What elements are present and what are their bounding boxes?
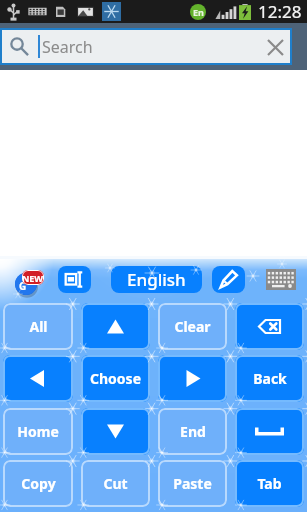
staticText: Paste	[173, 474, 212, 493]
button[interactable]: Handwriting	[212, 266, 245, 293]
button[interactable]: Paste	[158, 460, 227, 507]
staticText: Choose	[90, 369, 141, 388]
button[interactable]: Back	[235, 355, 304, 402]
button[interactable]: Cut	[81, 460, 150, 507]
button[interactable]: Switch keyboard	[58, 266, 91, 293]
staticText: Tab	[257, 474, 282, 493]
button[interactable]: Tab	[235, 460, 304, 507]
staticText: Back	[253, 369, 287, 388]
staticText: 12:28	[258, 0, 302, 23]
staticText: End	[180, 422, 206, 441]
button[interactable]: Clear search	[263, 35, 287, 59]
button[interactable]: Hide keyboard	[266, 269, 296, 290]
staticText: Clear	[174, 317, 211, 336]
button[interactable]: Store	[15, 269, 46, 295]
staticText: English	[127, 268, 186, 291]
button[interactable]: Home	[3, 408, 73, 455]
button[interactable]: Search	[2, 30, 290, 63]
button[interactable]: English	[111, 266, 202, 293]
button[interactable]: Clear	[158, 303, 227, 350]
button[interactable]: right	[158, 355, 227, 402]
staticText: G	[19, 279, 27, 293]
staticText: All	[29, 317, 48, 336]
staticText: Copy	[21, 474, 56, 493]
staticText: En	[193, 6, 204, 18]
button[interactable]: up	[81, 303, 150, 350]
button[interactable]: Choose	[81, 355, 150, 402]
staticText: Cut	[103, 474, 128, 493]
button[interactable]: Copy	[3, 460, 73, 507]
staticText: Home	[17, 422, 59, 441]
button[interactable]: left	[3, 355, 73, 402]
button[interactable]: All	[3, 303, 73, 350]
staticText: NEW	[22, 272, 44, 284]
button[interactable]: down	[81, 408, 150, 455]
button[interactable]: space	[235, 408, 304, 455]
button[interactable]: backspace	[235, 303, 304, 350]
button[interactable]: End	[158, 408, 227, 455]
staticText: Search	[42, 36, 93, 58]
